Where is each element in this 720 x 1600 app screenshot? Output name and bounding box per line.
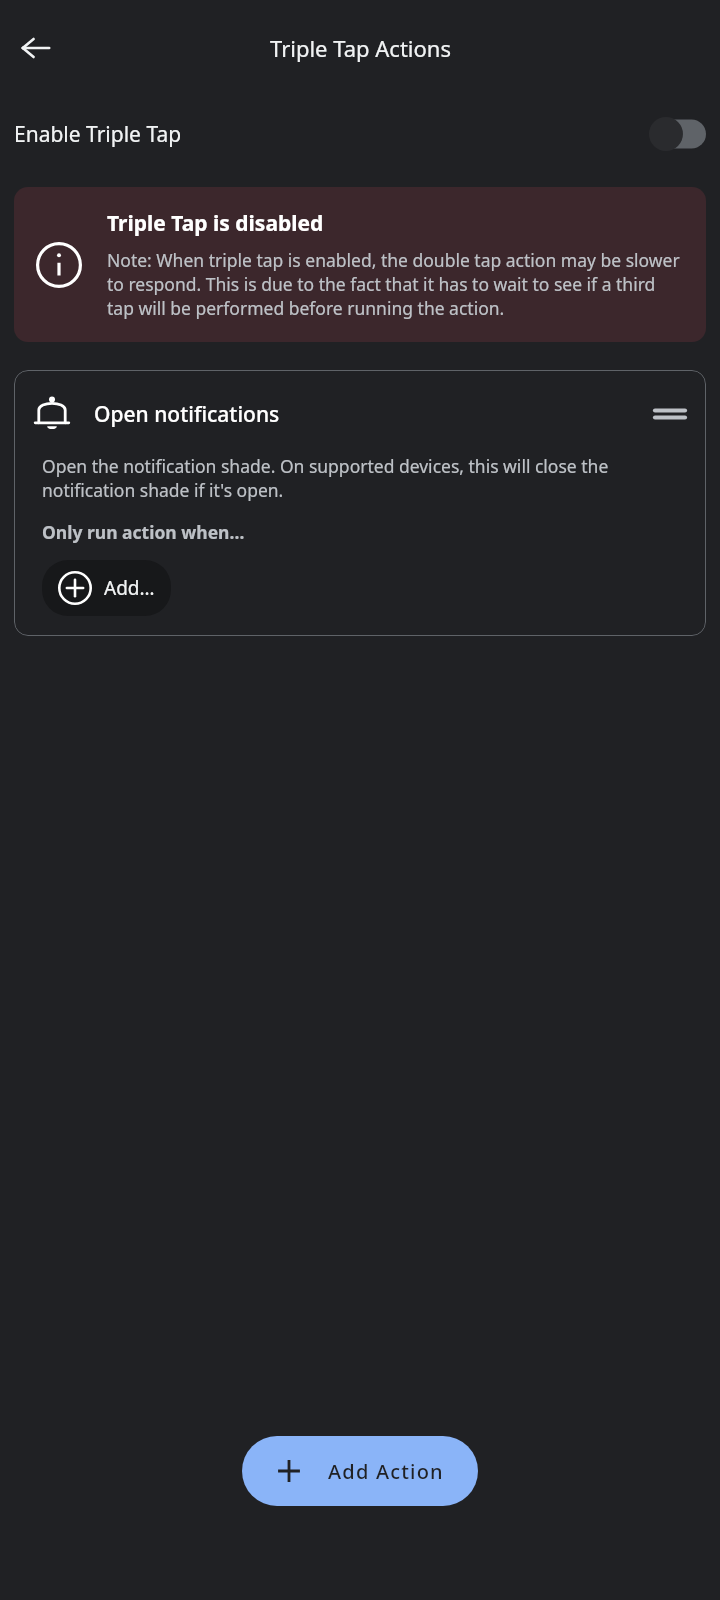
staticText: Add…: [104, 575, 155, 601]
staticText: Triple Tap is disabled: [107, 209, 324, 238]
button[interactable]: Reorder: [648, 392, 692, 436]
button[interactable]: Back: [12, 24, 60, 72]
staticText: Only run action when…: [42, 520, 245, 544]
staticText: Open notifications: [94, 400, 648, 429]
staticText: Add Action: [328, 1458, 444, 1485]
button[interactable]: Open notifications: [14, 370, 706, 636]
button[interactable]: Add Action: [242, 1436, 478, 1506]
button[interactable]: Triple Tap is disabled: [14, 187, 706, 342]
button[interactable]: Add…: [42, 560, 171, 616]
staticText: Note: When triple tap is enabled, the do…: [107, 248, 686, 320]
staticText: Triple Tap Actions: [270, 33, 451, 63]
button[interactable]: Enable Triple Tap toggle: [644, 117, 706, 151]
button[interactable]: Enable Triple Tap: [0, 96, 720, 172]
staticText: Open the notification shade. On supporte…: [42, 454, 686, 502]
staticText: Enable Triple Tap: [14, 120, 644, 149]
